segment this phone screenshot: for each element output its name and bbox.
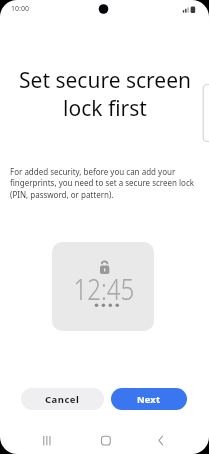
staticText: 12:45 [74,268,134,309]
staticText: Set secure screen lock first [19,66,191,122]
staticText: 10:00 [11,4,29,14]
staticText: Next [137,393,161,406]
staticText: For added security, before you can add y… [10,166,195,201]
staticText: Cancel [45,393,80,406]
